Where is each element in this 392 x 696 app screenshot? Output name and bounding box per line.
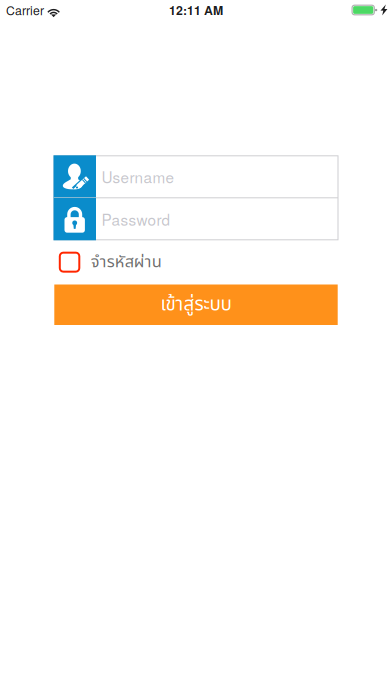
- staticText: Username: [101, 166, 174, 188]
- button[interactable]: จำรหัสผ่าน: [54, 238, 162, 287]
- staticText: Password: [101, 208, 170, 230]
- button[interactable]: เข้าสู่ระบบ: [54, 284, 338, 325]
- staticText: 12:11 AM: [169, 1, 223, 19]
- staticText: เข้าสู่ระบบ: [160, 290, 231, 319]
- staticText: Carrier: [6, 1, 44, 19]
- staticText: จำรหัสผ่าน: [91, 250, 162, 275]
